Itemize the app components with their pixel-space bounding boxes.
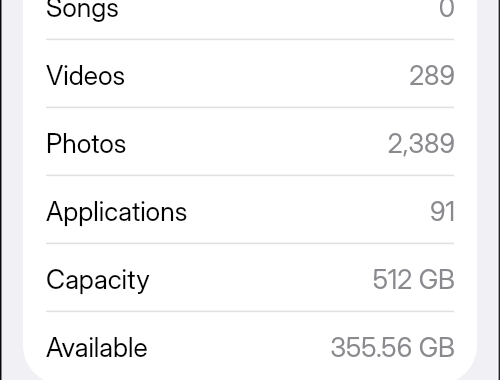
staticText: Available — [46, 331, 148, 363]
staticText: 355.56 GB — [330, 331, 455, 363]
staticText: Capacity — [46, 263, 150, 295]
staticText: 289 — [409, 59, 455, 91]
button[interactable]: Photos — [23, 109, 477, 177]
staticText: 2,389 — [387, 127, 455, 159]
staticText: 0 — [438, 0, 455, 23]
staticText: 91 — [429, 195, 455, 227]
button[interactable]: Applications — [23, 177, 477, 245]
staticText: Photos — [46, 127, 127, 159]
staticText: Applications — [46, 195, 188, 227]
button[interactable]: Videos — [23, 41, 477, 109]
button[interactable]: Available — [23, 313, 477, 380]
staticText: Songs — [46, 0, 119, 23]
button[interactable]: Songs — [23, 0, 477, 41]
staticText: Videos — [46, 59, 126, 91]
button[interactable]: Capacity — [23, 245, 477, 313]
staticText: 512 GB — [372, 263, 455, 295]
